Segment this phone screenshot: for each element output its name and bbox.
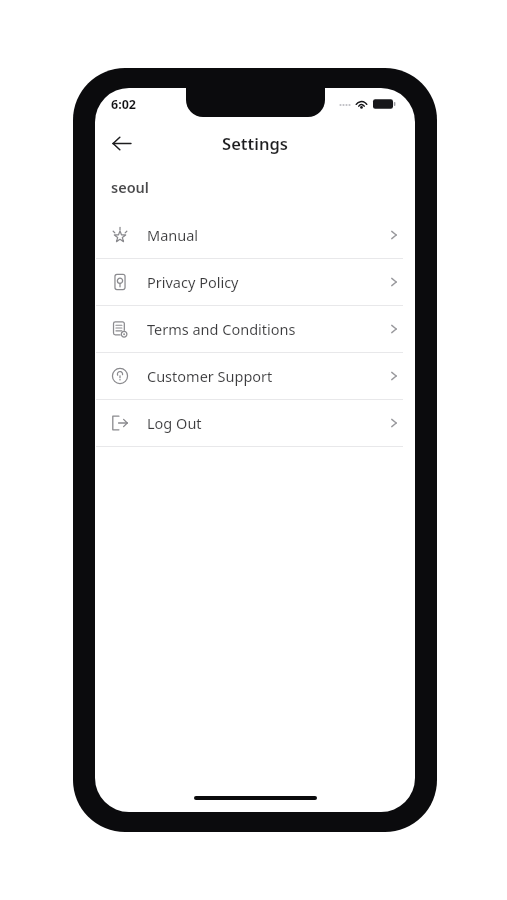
staticText: Settings <box>222 132 288 154</box>
button[interactable]: Log Out <box>95 400 415 446</box>
staticText: Terms and Conditions <box>147 319 387 339</box>
staticText: Log Out <box>147 413 387 433</box>
button[interactable]: Manual <box>95 212 415 258</box>
button[interactable]: Back <box>99 121 143 165</box>
button[interactable]: Privacy Policy <box>95 259 415 305</box>
staticText: Customer Support <box>147 366 387 386</box>
button[interactable]: Terms and Conditions <box>95 306 415 352</box>
staticText: Privacy Policy <box>147 272 387 292</box>
staticText: seoul <box>111 177 149 197</box>
staticText: Manual <box>147 225 387 245</box>
button[interactable]: Customer Support <box>95 353 415 399</box>
staticText: 6:02 <box>111 96 136 113</box>
